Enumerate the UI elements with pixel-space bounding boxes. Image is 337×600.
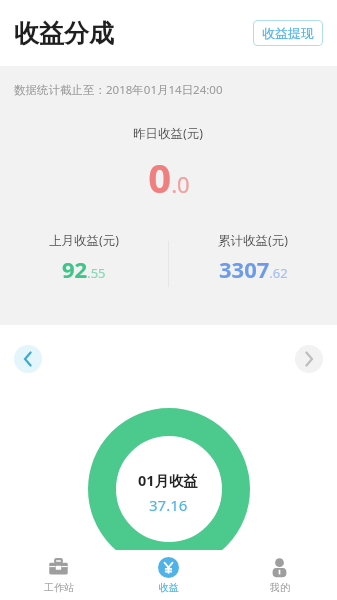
staticText: 工作站 (44, 581, 74, 594)
button[interactable]: Previous month (14, 345, 42, 373)
staticText: 数据统计截止至：2018年01月14日24:00 (14, 82, 223, 98)
staticText: 昨日收益(元) (133, 125, 204, 142)
staticText: 37.16 (149, 495, 188, 515)
staticText: 收益分成 (14, 18, 114, 49)
staticText: 累计收益(元) (218, 232, 289, 249)
staticText: 92.55 (62, 254, 106, 284)
button[interactable]: 上月收益(元) (0, 228, 168, 284)
button[interactable]: Next month (295, 345, 323, 373)
staticText: 0.0 (148, 150, 190, 204)
staticText: 收益提现 (262, 25, 314, 41)
staticText: 上月收益(元) (49, 232, 120, 249)
button[interactable]: 工作站 (6, 550, 111, 600)
staticText: 3307.62 (219, 254, 288, 284)
button[interactable]: 累计收益(元) (169, 228, 337, 284)
staticText: 收益 (159, 581, 179, 594)
staticText: 01月收益 (138, 470, 199, 490)
button[interactable]: 收益 (116, 550, 221, 600)
button[interactable]: 收益提现 (253, 20, 323, 46)
staticText: 我的 (270, 581, 290, 594)
button[interactable]: 我的 (227, 550, 332, 600)
